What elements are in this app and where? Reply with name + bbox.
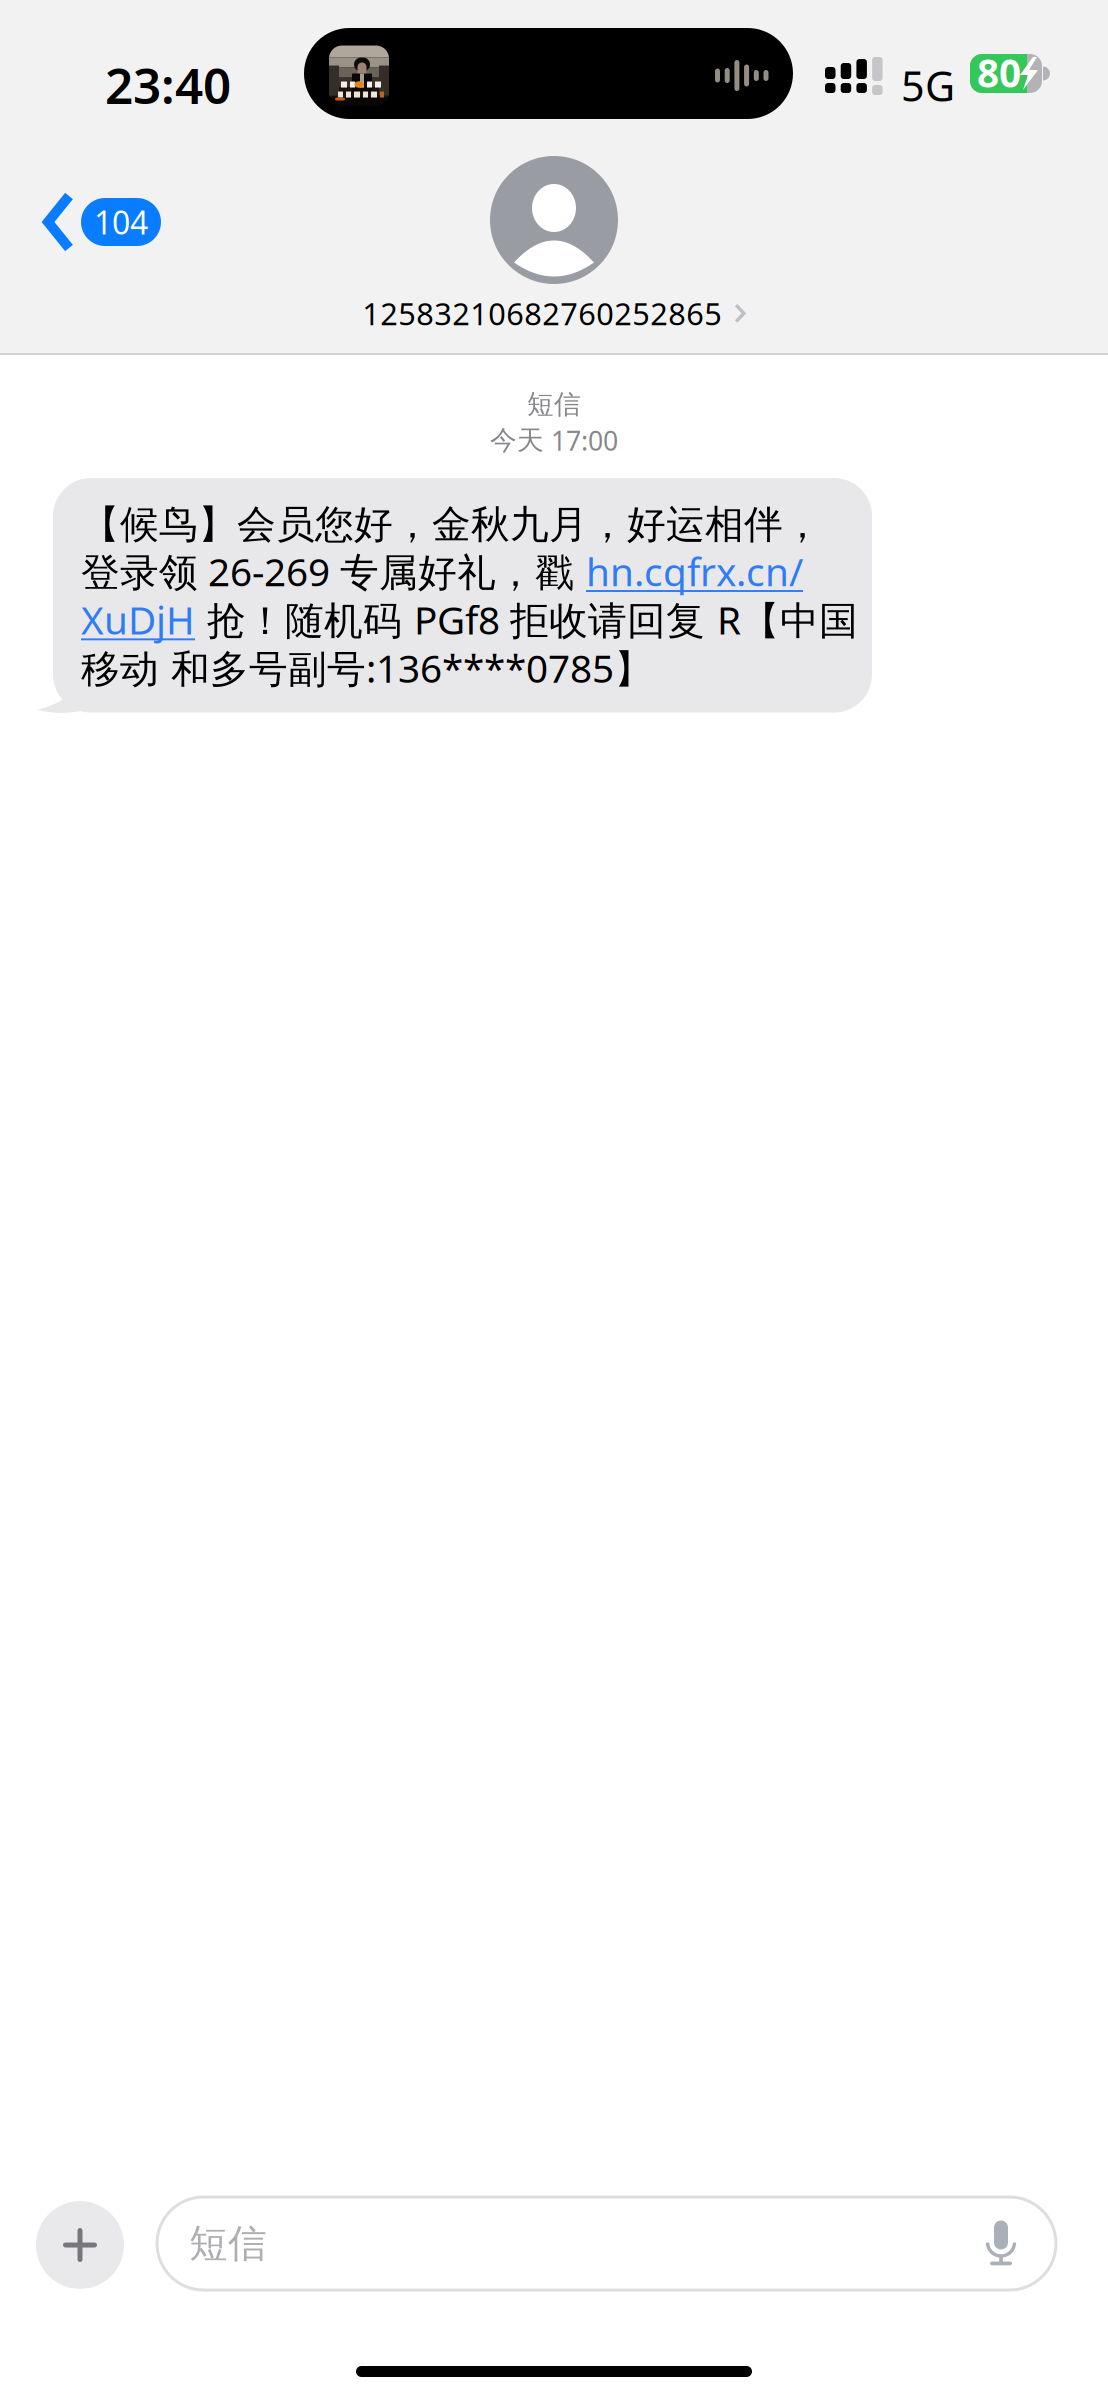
staticText: 23:40 [105,52,231,117]
staticText: hn.cqfrx.cn/ [586,545,803,597]
staticText: 104 [94,201,148,243]
staticText: 抢！随机码 PGf8 拒收请回复 R【中国 [195,594,858,645]
staticText: 登录领 26-269 专属好礼，戳 [81,545,586,597]
staticText: 【候鸟】会员您好，金秋九月，好运相伴， [81,501,822,548]
staticText: 移动 和多号副号:136****0785】 [81,642,653,693]
staticText: 短信 [527,388,581,421]
staticText: 短信 [189,2220,267,2267]
staticText: 5G [901,58,955,113]
button[interactable]: Audio message [985,2220,1017,2266]
staticText: 今天 [490,424,544,457]
staticText: 12583210682760252865 [362,293,722,334]
staticText: 80 [977,47,1021,98]
button[interactable]: 12583210682760252865 [362,284,746,343]
button[interactable]: 104 [38,186,165,258]
button[interactable]: More options [36,2201,124,2289]
staticText: 17:00 [551,423,618,458]
staticText: XuDjH [81,594,195,645]
